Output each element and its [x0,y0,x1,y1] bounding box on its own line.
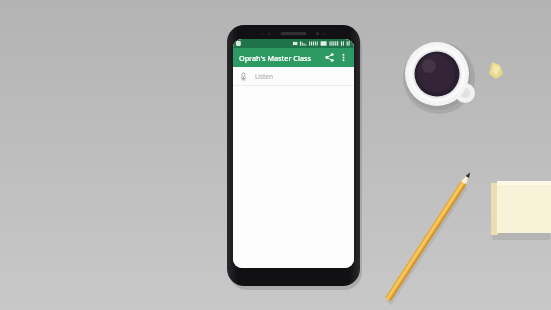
button[interactable]: Listen [233,67,354,85]
staticText: Oprah's Master Class [239,53,322,63]
staticText: Listen [255,72,273,81]
button[interactable]: More options [337,51,350,64]
button[interactable]: Share [322,50,337,65]
